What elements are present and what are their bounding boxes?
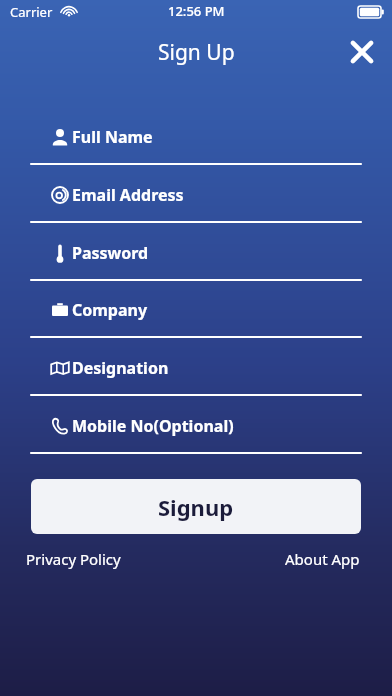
- staticText: Email Address: [72, 184, 184, 206]
- staticText: Password: [72, 242, 149, 264]
- button[interactable]: Close: [340, 30, 384, 74]
- staticText: Designation: [72, 357, 169, 379]
- staticText: Mobile No(Optional): [72, 415, 234, 437]
- button[interactable]: Password: [31, 232, 361, 282]
- button[interactable]: About App: [285, 549, 360, 569]
- button[interactable]: Designation: [31, 347, 361, 397]
- button[interactable]: Full Name: [31, 116, 361, 166]
- staticText: Company: [72, 299, 148, 321]
- button[interactable]: Email Address: [31, 174, 361, 224]
- staticText: Full Name: [72, 126, 153, 148]
- button[interactable]: Signup: [31, 479, 361, 534]
- button[interactable]: Mobile No(Optional): [31, 405, 361, 455]
- button[interactable]: Privacy Policy: [26, 549, 121, 569]
- staticText: 12:56 PM: [168, 2, 225, 20]
- staticText: About App: [285, 549, 360, 569]
- staticText: Signup: [158, 492, 234, 522]
- staticText: Carrier: [10, 3, 53, 21]
- button[interactable]: Company: [31, 289, 361, 339]
- staticText: Sign Up: [158, 38, 235, 67]
- staticText: Privacy Policy: [26, 549, 121, 569]
